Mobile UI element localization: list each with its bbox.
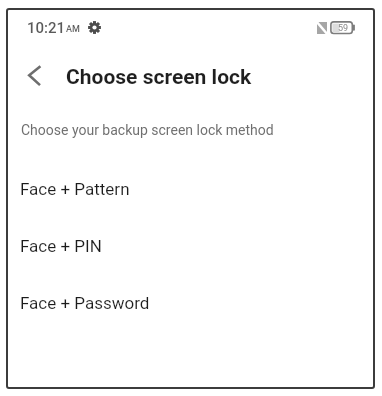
button[interactable] [14,55,56,97]
staticText: Choose screen lock [66,65,252,90]
button[interactable]: Face + PIN [8,217,374,274]
staticText: Face + Password [20,293,150,313]
staticText: Choose your backup screen lock method [21,122,274,138]
button[interactable]: Face + Pattern [8,161,374,217]
staticText: AM [66,24,80,35]
button[interactable]: Face + Password [8,274,374,331]
staticText: 10:21 [27,19,66,37]
staticText: Face + PIN [20,236,102,256]
staticText: Face + Pattern [20,179,130,199]
staticText: 59 [338,23,349,34]
